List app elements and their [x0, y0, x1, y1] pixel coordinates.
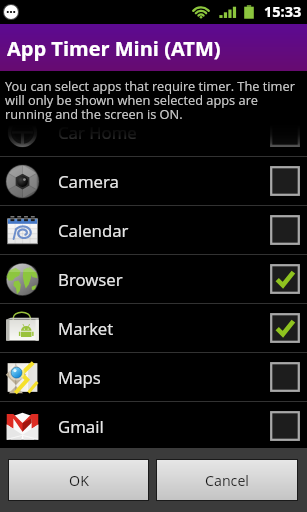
button[interactable]: Camera: [0, 157, 307, 205]
button[interactable]: Calendar: [0, 206, 307, 254]
staticText: Browser: [58, 268, 123, 291]
staticText: Camera: [58, 170, 119, 193]
staticText: Cancel: [205, 471, 249, 490]
button[interactable]: Toggle: [270, 215, 300, 245]
staticText: Calendar: [58, 219, 129, 242]
staticText: App Timer Mini (ATM): [7, 35, 221, 62]
button[interactable]: Maps: [0, 353, 307, 401]
button[interactable]: Gmail: [0, 402, 307, 448]
button[interactable]: Toggle: [270, 117, 300, 147]
button[interactable]: Toggle: [270, 362, 300, 392]
staticText: OK: [69, 471, 89, 490]
button[interactable]: OK: [9, 460, 148, 500]
staticText: You can select apps that require timer. …: [5, 77, 300, 123]
staticText: Car Home: [58, 121, 137, 144]
button[interactable]: Cancel: [157, 460, 297, 500]
button[interactable]: Toggle: [270, 264, 300, 294]
button[interactable]: Browser: [0, 255, 307, 303]
button[interactable]: Toggle: [270, 313, 300, 343]
staticText: 15:33: [264, 2, 302, 22]
button[interactable]: Toggle: [270, 411, 300, 441]
button[interactable]: Toggle: [270, 166, 300, 196]
button[interactable]: Market: [0, 304, 307, 352]
staticText: Gmail: [58, 415, 104, 438]
staticText: Market: [58, 317, 114, 340]
button[interactable]: Car Home: [0, 108, 307, 156]
staticText: Maps: [58, 366, 101, 389]
